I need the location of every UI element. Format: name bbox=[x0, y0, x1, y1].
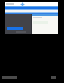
other: Assistant bbox=[20, 2, 25, 7]
